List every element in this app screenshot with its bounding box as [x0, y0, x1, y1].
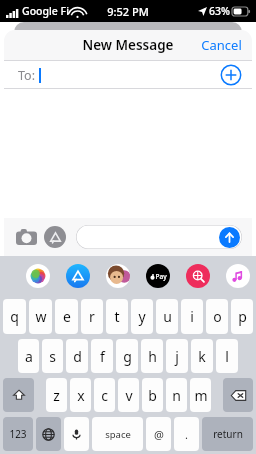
staticText: k: [198, 347, 206, 366]
button[interactable]: f: [91, 339, 113, 373]
staticText: t: [114, 307, 120, 326]
button[interactable]: o: [206, 299, 228, 334]
staticText: Cancel: [201, 36, 242, 54]
staticText: @: [154, 427, 164, 442]
button[interactable]: App Store: [44, 226, 66, 248]
button[interactable]: Send: [76, 225, 242, 249]
staticText: y: [138, 307, 146, 326]
button[interactable]: t: [106, 299, 128, 334]
button[interactable]: s: [42, 339, 63, 373]
button[interactable]: i: [181, 299, 203, 334]
staticText: Pay: [155, 272, 167, 281]
button[interactable]: q: [3, 299, 26, 334]
button[interactable]: Apple Pay: [146, 264, 170, 288]
staticText: j: [175, 347, 179, 366]
button[interactable]: Music: [226, 264, 250, 288]
staticText: l: [225, 347, 229, 366]
staticText: v: [125, 386, 133, 405]
button[interactable]: Add contact: [220, 64, 242, 86]
button[interactable]: r: [81, 299, 103, 334]
staticText: q: [10, 307, 19, 326]
button[interactable]: v: [118, 378, 139, 412]
staticText: c: [101, 386, 108, 405]
button[interactable]: m: [190, 378, 211, 412]
staticText: a: [25, 347, 33, 366]
staticText: x: [77, 386, 85, 405]
staticText: g: [123, 347, 132, 366]
button[interactable]: p: [231, 299, 253, 334]
staticText: To:: [18, 67, 35, 84]
button[interactable]: w: [29, 299, 52, 334]
button[interactable]: Change keyboard: [36, 417, 61, 451]
staticText: e: [63, 307, 71, 326]
staticText: 63%: [209, 4, 230, 18]
staticText: d: [73, 347, 82, 366]
staticText: New Message: [82, 36, 174, 54]
button[interactable]: Cancel: [191, 30, 252, 60]
staticText: h: [148, 347, 157, 366]
staticText: o: [213, 307, 222, 326]
button[interactable]: u: [156, 299, 178, 334]
button[interactable]: Camera: [14, 225, 38, 249]
button[interactable]: return: [202, 417, 253, 451]
button[interactable]: .: [174, 417, 199, 451]
staticText: z: [53, 386, 60, 405]
staticText: return: [213, 427, 243, 441]
button[interactable]: @: [146, 417, 171, 451]
button[interactable]: 123: [3, 417, 33, 451]
staticText: p: [238, 307, 247, 326]
button[interactable]: c: [94, 378, 115, 412]
staticText: u: [163, 307, 172, 326]
button[interactable]: h: [141, 339, 163, 373]
button[interactable]: Memoji: [106, 264, 130, 288]
staticText: w: [35, 307, 47, 326]
staticText: 9:52 PM: [107, 4, 149, 19]
staticText: s: [49, 347, 56, 366]
button[interactable]: Dictate: [64, 417, 89, 451]
button[interactable]: j: [166, 339, 188, 373]
button[interactable]: Photos: [26, 264, 50, 288]
staticText: b: [148, 386, 157, 405]
button[interactable]: y: [131, 299, 153, 334]
staticText: n: [172, 386, 181, 405]
staticText: f: [100, 347, 105, 366]
button[interactable]: Music search: [186, 264, 210, 288]
button[interactable]: n: [166, 378, 187, 412]
button[interactable]: z: [46, 378, 67, 412]
button[interactable]: App Store: [66, 264, 90, 288]
button[interactable]: b: [142, 378, 163, 412]
button[interactable]: space: [92, 417, 143, 451]
staticText: i: [190, 307, 194, 326]
button[interactable]: x: [70, 378, 91, 412]
staticText: .: [185, 427, 188, 442]
staticText: space: [105, 428, 131, 441]
button[interactable]: Backspace: [223, 378, 253, 412]
staticText: m: [194, 386, 208, 405]
button[interactable]: d: [66, 339, 88, 373]
button[interactable]: g: [116, 339, 138, 373]
button[interactable]: Send: [219, 227, 240, 248]
staticText: 123: [9, 427, 27, 441]
button[interactable]: k: [191, 339, 213, 373]
button[interactable]: Shift: [3, 378, 34, 412]
staticText: r: [89, 307, 95, 326]
staticText: Google Fi: [22, 4, 69, 18]
button[interactable]: a: [18, 339, 39, 373]
button[interactable]: To:: [4, 61, 252, 89]
button[interactable]: e: [55, 299, 78, 334]
button[interactable]: l: [216, 339, 238, 373]
